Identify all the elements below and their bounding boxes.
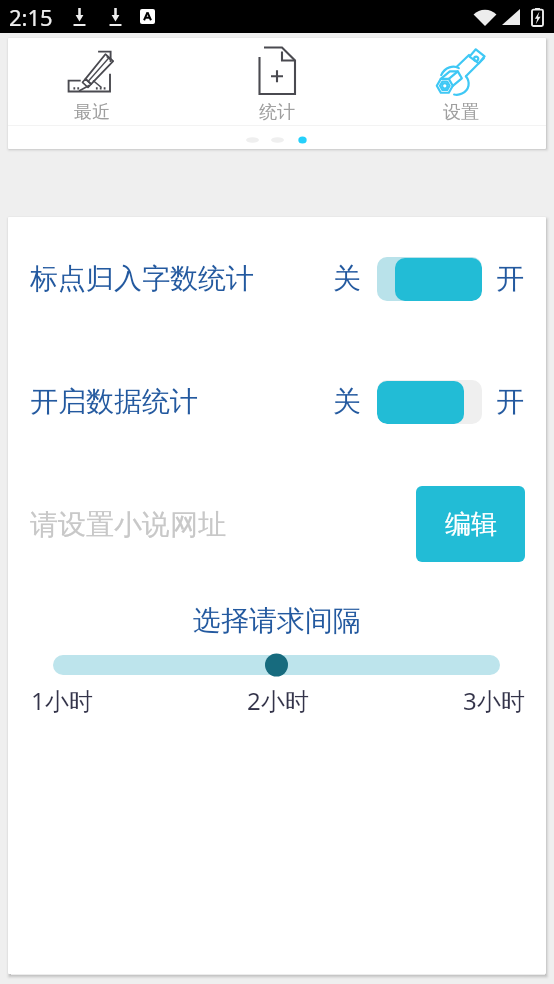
staticText: 请设置小说网址 <box>30 507 226 542</box>
staticText: 开 <box>496 384 524 419</box>
button[interactable]: Recent <box>50 38 134 125</box>
button[interactable]: Toggle on <box>377 257 482 301</box>
staticText: 标点归入字数统计 <box>30 261 254 296</box>
staticText: 1小时 <box>31 684 93 717</box>
button[interactable]: 请设置小说网址 <box>30 486 416 562</box>
staticText: 选择请求间隔 <box>193 603 361 638</box>
button[interactable]: 编辑 <box>416 486 525 562</box>
staticText: 最近 <box>74 101 110 124</box>
staticText: 统计 <box>259 101 295 124</box>
staticText: 开 <box>496 261 524 296</box>
staticText: 开启数据统计 <box>30 384 198 419</box>
button[interactable]: Statistics <box>235 38 319 125</box>
button[interactable]: Settings <box>419 38 503 125</box>
staticText: 关 <box>333 384 361 419</box>
button[interactable]: Toggle off <box>377 380 482 424</box>
staticText: 3小时 <box>463 684 525 717</box>
staticText: 编辑 <box>445 508 497 541</box>
staticText: 设置 <box>443 101 479 124</box>
staticText: 2:15 <box>9 2 53 32</box>
staticText: 关 <box>333 261 361 296</box>
staticText: 2小时 <box>247 684 309 717</box>
